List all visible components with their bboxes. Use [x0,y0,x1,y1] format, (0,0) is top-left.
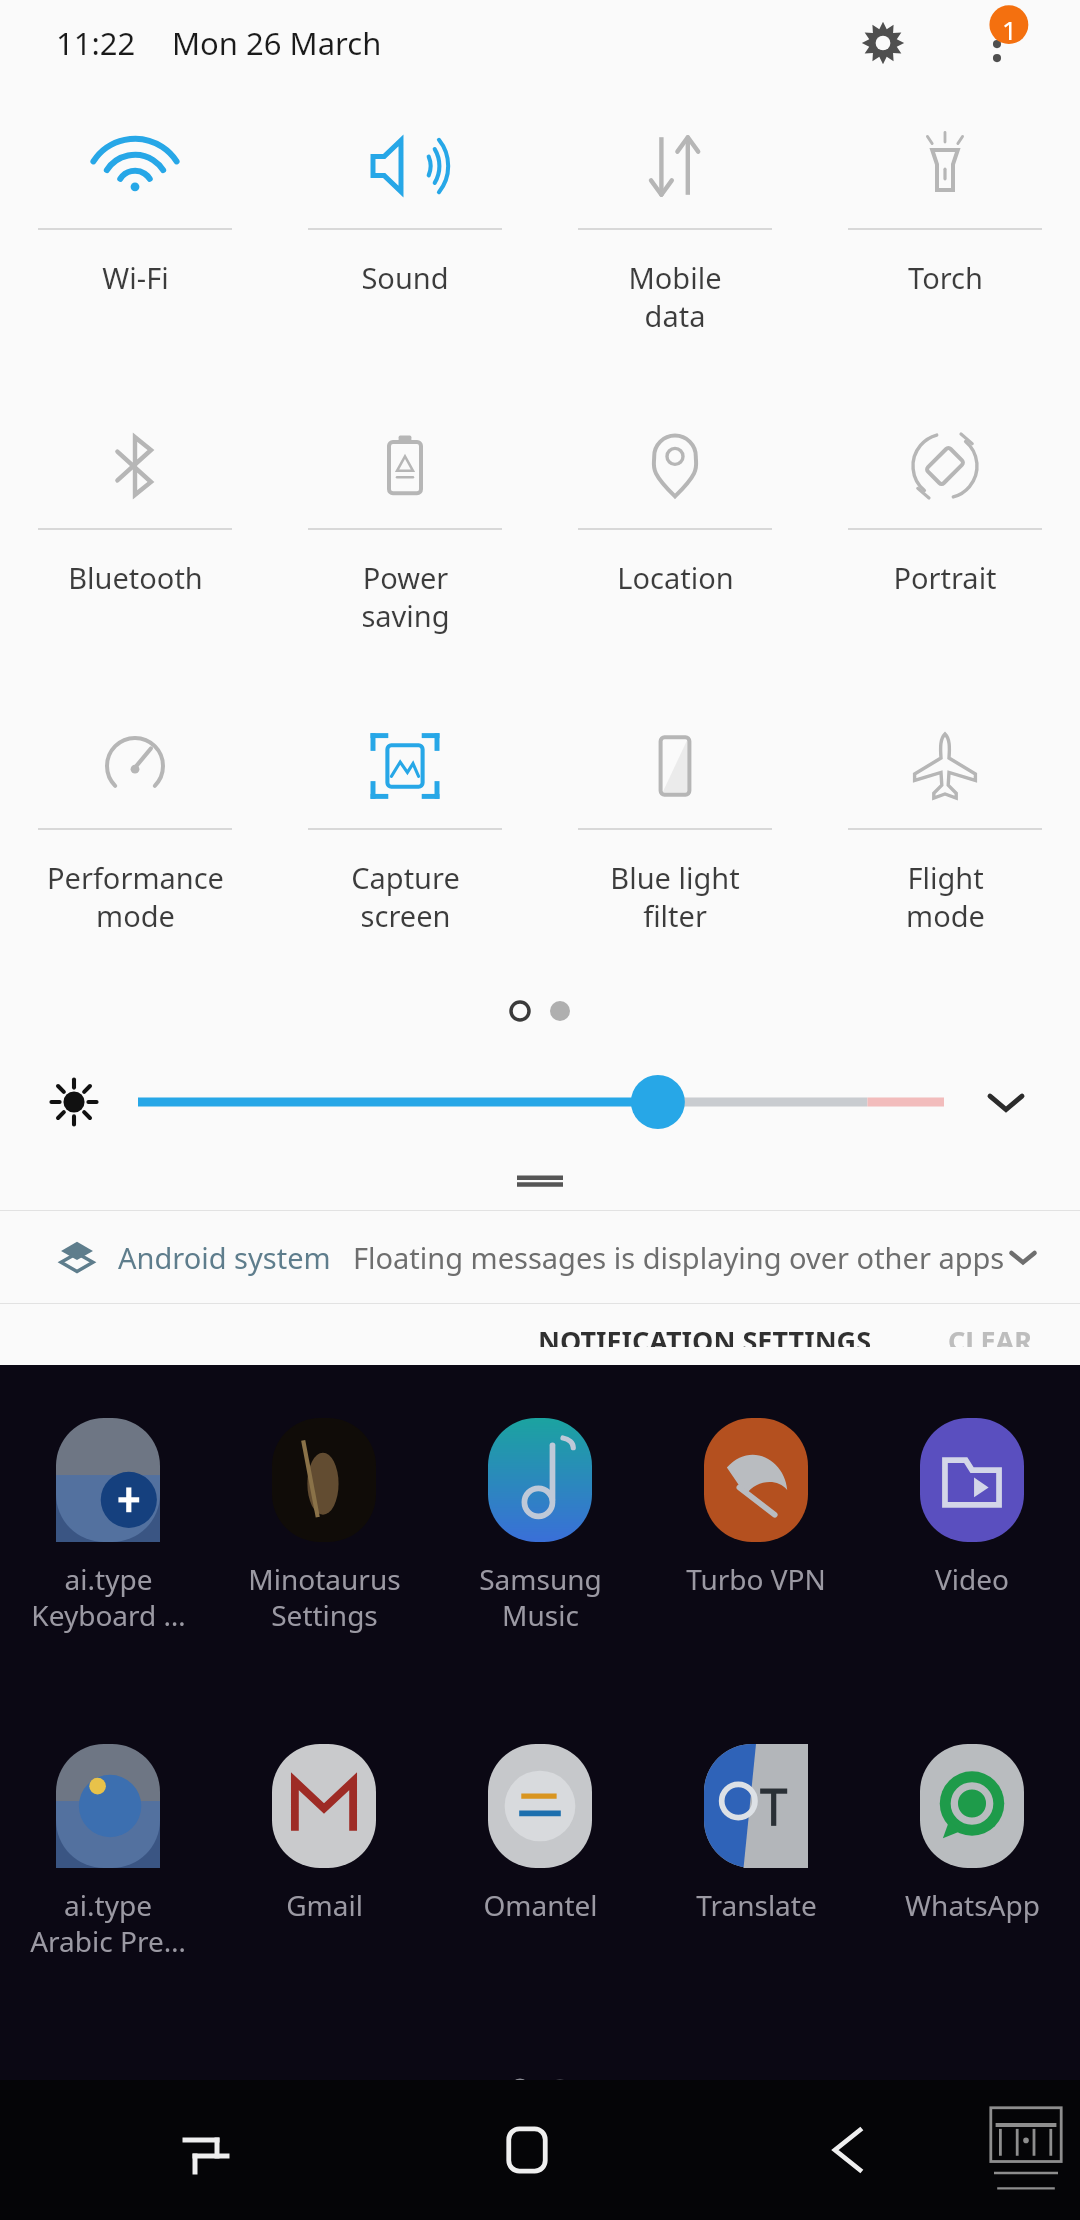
button[interactable]: Recents [151,2095,261,2205]
button[interactable]: Torch [810,96,1080,396]
button[interactable]: Back [793,2095,903,2205]
button[interactable] [138,1072,944,1132]
staticText: Mobile data [628,258,722,335]
button[interactable]: Omantel [432,1744,648,2044]
staticText: Omantel [483,1886,598,1924]
button[interactable]: Turbo VPN [648,1418,864,1718]
staticText: WhatsApp [905,1886,1040,1924]
button[interactable]: Performance mode [0,696,270,996]
button[interactable]: Translate [648,1744,864,2044]
button[interactable]: Android system [0,1211,1080,1303]
staticText: Portrait [893,558,997,597]
staticText: Location [617,558,734,597]
button[interactable]: Portrait [810,396,1080,696]
staticText: Turbo VPN [686,1560,826,1598]
staticText: Flight mode [906,858,985,935]
button[interactable]: ai.type Keyboard … [0,1418,216,1718]
button[interactable]: More options [954,0,1040,86]
staticText: Floating messages is displaying over oth… [353,1238,1005,1277]
staticText: 11:22 [56,22,136,64]
button[interactable]: Home [472,2095,582,2205]
button[interactable]: Blue light filter [540,696,810,996]
staticText: Capture screen [351,858,460,935]
button[interactable]: Location [540,396,810,696]
staticText: Power saving [361,558,450,635]
button[interactable]: Collapse panel [0,1152,1080,1210]
button[interactable]: NOTIFICATION SETTINGS [512,1304,898,1365]
button[interactable]: Auto brightness [36,1064,112,1140]
button[interactable]: ai.type Arabic Pre… [0,1744,216,2044]
staticText: Samsung Music [479,1560,602,1634]
staticText: Minotaurus Settings [248,1560,401,1634]
staticText: Mon 26 March [172,22,382,64]
button[interactable]: CLEAR [922,1304,1058,1365]
button[interactable]: Bluetooth [0,396,270,696]
staticText: ai.type Arabic Pre… [30,1886,186,1960]
staticText: Notes [924,1310,1002,1348]
staticText: ai.type Keyboard … [31,1560,186,1634]
staticText: Torch [908,258,983,297]
staticText: Performance mode [47,858,224,935]
staticText: Gmail [286,1886,363,1924]
staticText: Blue light filter [610,858,740,935]
button[interactable]: Samsung Music [432,1418,648,1718]
button[interactable]: Minotaurus Settings [216,1418,432,1718]
button[interactable]: Mobile data [540,96,810,396]
button[interactable]: Settings [840,0,926,86]
staticText: Android system [118,1238,331,1277]
button[interactable]: Gmail [216,1744,432,2044]
staticText: NOTIFICATION SETTINGS [538,1322,872,1347]
button[interactable]: WhatsApp [864,1744,1080,2044]
button[interactable]: Expand brightness settings [968,1064,1044,1140]
button[interactable]: Video [864,1418,1080,1718]
staticText: 1 [1002,12,1017,47]
staticText: CLEAR [948,1322,1032,1347]
button[interactable]: Wi-Fi [0,96,270,396]
button[interactable]: Sound [270,96,540,396]
button[interactable]: Power saving [270,396,540,696]
staticText: Bluetooth [68,558,203,597]
button[interactable]: Capture screen [270,696,540,996]
staticText: Translate [696,1886,817,1924]
staticText: Video [935,1560,1009,1598]
button[interactable]: Flight mode [810,696,1080,996]
staticText: Wi-Fi [102,258,169,297]
staticText: Sound [361,258,449,297]
